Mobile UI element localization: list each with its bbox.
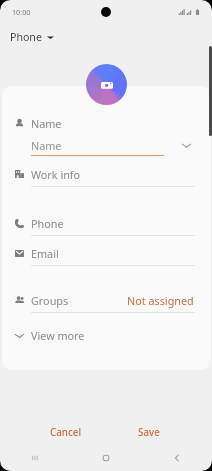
button[interactable]: Cancel [40, 421, 92, 444]
staticText: View more [31, 328, 85, 343]
staticText: Phone [31, 216, 64, 231]
staticText: Save [138, 426, 160, 439]
staticText: Email [31, 246, 59, 261]
button[interactable]: Recents [0, 445, 70, 471]
staticText: Cancel [50, 426, 82, 439]
button[interactable]: Phone [10, 30, 54, 44]
button[interactable]: Work info [2, 162, 211, 186]
button[interactable]: Save [128, 421, 170, 444]
button[interactable]: Email [2, 241, 211, 265]
staticText: Name [31, 116, 62, 131]
button[interactable]: Back [141, 445, 212, 471]
staticText: Work info [31, 167, 81, 182]
button[interactable]: Add photo [86, 64, 127, 105]
button[interactable]: View more [2, 323, 211, 347]
button[interactable]: Phone [2, 211, 211, 235]
staticText: 10:00 [12, 7, 31, 17]
staticText: Not assigned [127, 293, 194, 308]
button[interactable]: Name [2, 111, 211, 135]
button[interactable]: Home [70, 445, 141, 471]
button[interactable]: Name [2, 133, 211, 157]
staticText: Groups [31, 293, 69, 308]
staticText: Phone [10, 30, 42, 44]
staticText: Name [31, 138, 62, 153]
button[interactable]: Groups [2, 288, 211, 312]
